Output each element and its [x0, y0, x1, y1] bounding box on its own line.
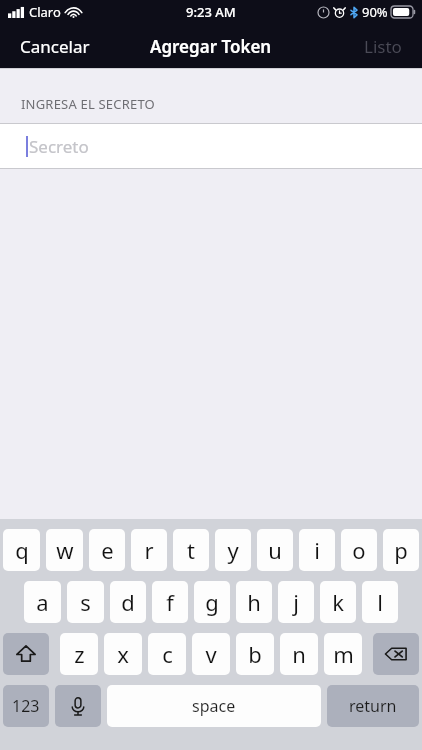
button[interactable]: j — [278, 581, 314, 623]
button[interactable]: w — [46, 529, 83, 571]
staticText: v — [205, 639, 217, 669]
button[interactable]: Secreto — [0, 124, 422, 168]
button[interactable]: u — [257, 529, 293, 571]
staticText: d — [121, 587, 135, 617]
staticText: z — [74, 639, 85, 669]
staticText: c — [162, 639, 173, 669]
staticText: k — [332, 587, 344, 617]
button[interactable]: g — [194, 581, 230, 623]
button[interactable]: Dictate — [55, 685, 101, 727]
staticText: u — [268, 535, 282, 565]
staticText: h — [247, 587, 261, 617]
staticText: Listo — [364, 35, 402, 58]
button[interactable]: p — [383, 529, 419, 571]
staticText: t — [187, 535, 195, 565]
button[interactable]: y — [215, 529, 251, 571]
staticText: s — [80, 587, 91, 617]
button[interactable]: s — [67, 581, 104, 623]
staticText: 123 — [12, 695, 40, 717]
staticText: Claro — [29, 3, 61, 21]
button[interactable]: n — [280, 633, 318, 675]
staticText: a — [36, 587, 49, 617]
button[interactable]: o — [341, 529, 377, 571]
button[interactable]: Shift — [3, 633, 49, 675]
staticText: space — [192, 695, 236, 717]
staticText: l — [377, 587, 383, 617]
button[interactable]: space — [107, 685, 321, 727]
button[interactable]: return — [327, 685, 419, 727]
button[interactable]: e — [89, 529, 125, 571]
staticText: q — [15, 535, 29, 565]
button[interactable]: t — [173, 529, 209, 571]
staticText: x — [117, 639, 129, 669]
staticText: g — [205, 587, 219, 617]
button[interactable]: Listo — [344, 24, 422, 68]
button[interactable]: v — [192, 633, 230, 675]
staticText: i — [314, 535, 320, 565]
button[interactable]: i — [299, 529, 335, 571]
staticText: b — [248, 639, 262, 669]
staticText: r — [144, 535, 154, 565]
button[interactable]: f — [152, 581, 188, 623]
button[interactable]: k — [320, 581, 356, 623]
staticText: 90% — [362, 3, 388, 21]
button[interactable]: q — [3, 529, 40, 571]
staticText: y — [227, 535, 239, 565]
button[interactable]: c — [148, 633, 186, 675]
staticText: p — [394, 535, 408, 565]
staticText: w — [56, 535, 74, 565]
button[interactable]: l — [362, 581, 398, 623]
staticText: j — [293, 587, 299, 617]
staticText: Cancelar — [20, 35, 90, 58]
staticText: m — [333, 639, 354, 669]
staticText: Agregar Token — [150, 35, 272, 58]
staticText: INGRESA EL SECRETO — [21, 95, 155, 113]
button[interactable]: a — [24, 581, 61, 623]
staticText: n — [292, 639, 306, 669]
button[interactable]: d — [110, 581, 146, 623]
button[interactable]: z — [60, 633, 98, 675]
button[interactable]: 123 — [3, 685, 49, 727]
button[interactable]: Backspace — [373, 633, 419, 675]
button[interactable]: b — [236, 633, 274, 675]
staticText: Secreto — [29, 135, 89, 158]
button[interactable]: m — [324, 633, 362, 675]
button[interactable]: Cancelar — [0, 24, 110, 68]
staticText: f — [166, 587, 174, 617]
staticText: return — [349, 695, 397, 717]
staticText: 9:23 AM — [186, 3, 236, 21]
staticText: o — [352, 535, 366, 565]
button[interactable]: r — [131, 529, 167, 571]
button[interactable]: h — [236, 581, 272, 623]
staticText: e — [101, 535, 114, 565]
button[interactable]: x — [104, 633, 142, 675]
